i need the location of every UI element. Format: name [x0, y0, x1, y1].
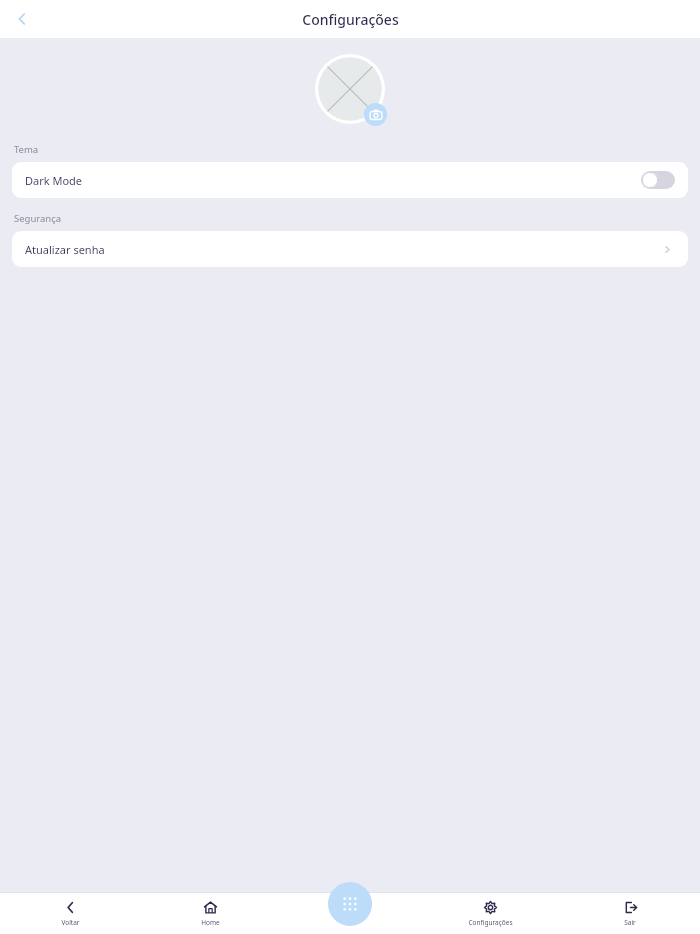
button[interactable]: Menu de aplicativos — [328, 882, 372, 926]
button[interactable]: Home — [140, 896, 280, 931]
staticText: Dark Mode — [25, 173, 641, 188]
button[interactable]: Alterar foto — [364, 103, 387, 126]
button[interactable]: Voltar — [0, 896, 140, 931]
button[interactable]: Voltar — [0, 0, 44, 38]
staticText: Atualizar senha — [25, 242, 662, 257]
button[interactable]: Dark Mode — [12, 162, 688, 198]
button[interactable]: Configurações — [420, 896, 560, 931]
button[interactable]: Atualizar senha — [12, 231, 688, 267]
button[interactable]: Dark Mode — [641, 171, 675, 189]
staticText: Configurações — [468, 918, 513, 927]
staticText: Configurações — [302, 10, 399, 29]
staticText: Home — [201, 918, 220, 927]
staticText: Sair — [624, 918, 636, 927]
button[interactable]: Foto de perfil — [315, 54, 385, 124]
staticText: Tema — [14, 143, 39, 156]
staticText: Segurança — [14, 212, 62, 225]
button[interactable]: Sair — [560, 896, 700, 931]
staticText: Voltar — [61, 918, 80, 927]
